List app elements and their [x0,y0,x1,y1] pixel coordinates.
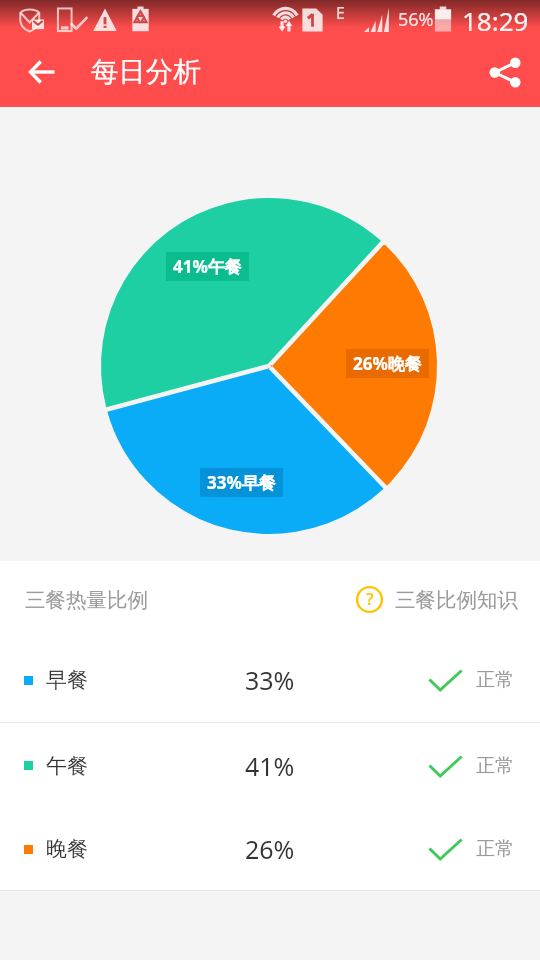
staticText: 正常 [476,754,514,778]
staticText: 正常 [476,668,514,692]
staticText: E [336,2,345,24]
staticText: 41%午餐 [173,255,242,278]
staticText: 56% [398,7,434,32]
staticText: 26% [245,832,295,866]
staticText: 33%早餐 [207,471,276,494]
button[interactable]: Share [481,48,529,96]
staticText: 午餐 [46,753,88,779]
staticText: 41% [245,749,295,783]
staticText: 33% [245,663,295,697]
staticText: 18:29 [462,3,529,38]
staticText: 正常 [476,837,514,861]
staticText: 26%晚餐 [353,352,422,375]
button[interactable]: 晚餐 [0,808,540,890]
button[interactable]: 午餐 [0,723,540,808]
button[interactable]: ? [347,574,527,625]
button[interactable]: Back [18,48,66,96]
staticText: 三餐热量比例 [25,587,148,613]
staticText: 早餐 [46,667,88,693]
staticText: 每日分析 [91,55,201,90]
staticText: 三餐比例知识 [395,587,518,613]
staticText: 晚餐 [46,836,88,862]
button[interactable]: 早餐 [0,638,540,722]
staticText: ? [366,587,374,610]
